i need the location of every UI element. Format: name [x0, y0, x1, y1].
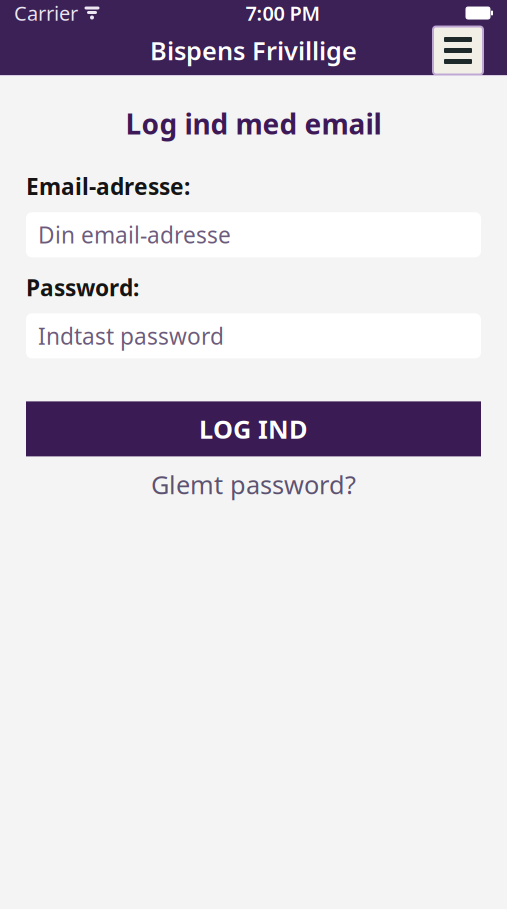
staticText: Bispens Frivillige: [150, 34, 357, 67]
staticText: Log ind med email: [125, 105, 381, 142]
button[interactable]: Glemt password?: [26, 470, 481, 498]
button[interactable]: Menu: [433, 26, 483, 74]
staticText: Din email-adresse: [38, 220, 231, 250]
staticText: Indtast password: [38, 321, 224, 351]
staticText: 7:00 PM: [245, 0, 320, 26]
staticText: Carrier: [14, 0, 78, 26]
button[interactable]: LOG IND: [26, 401, 481, 456]
staticText: Glemt password?: [151, 468, 356, 501]
staticText: Password:: [26, 272, 139, 302]
staticText: Email-adresse:: [26, 171, 190, 201]
staticText: LOG IND: [199, 412, 308, 446]
